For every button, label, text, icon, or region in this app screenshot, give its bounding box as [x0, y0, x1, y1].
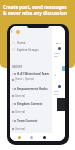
staticText: Explore Groups — [17, 48, 39, 52]
button[interactable]: Home - Special Announcements — [10, 77, 52, 82]
button[interactable]: General — [10, 93, 52, 98]
button[interactable]: Kingdom Connect — [10, 101, 52, 106]
staticText: disc — [54, 55, 58, 58]
staticText: H-A1 Winterland Team — [17, 72, 50, 76]
staticText: Stud — [54, 93, 59, 96]
button[interactable]: H-A1 Winterland Team — [10, 71, 52, 76]
staticText: Home — [17, 41, 26, 45]
staticText: General — [15, 110, 25, 114]
button[interactable]: General — [10, 126, 52, 131]
staticText: Ta — [54, 74, 57, 77]
staticText: General — [15, 127, 25, 131]
button[interactable]: Groups — [27, 133, 35, 141]
staticText: The m — [54, 52, 61, 55]
staticText: General — [15, 94, 25, 98]
button[interactable]: Empowerment Hacks — [10, 86, 52, 91]
staticText: Kingdom Connect — [17, 102, 43, 106]
button[interactable]: Home — [15, 133, 23, 141]
staticText: Create post, send messages — [3, 4, 67, 10]
staticText: & never miss any discussion — [3, 10, 67, 16]
staticText: Take — [54, 90, 59, 93]
staticText: Be A — [56, 41, 62, 44]
staticText: Empowerment Hacks — [17, 87, 48, 91]
button[interactable]: Explore Groups — [10, 46, 52, 53]
staticText: GROUPS — [12, 65, 23, 68]
button[interactable]: Home — [10, 39, 52, 46]
button[interactable]: Profile — [40, 133, 48, 141]
staticText: Team Connect — [17, 119, 38, 123]
staticText: Home - Special Announcements — [15, 77, 52, 82]
button[interactable]: General — [10, 109, 52, 114]
button[interactable]: Team Connect — [10, 118, 52, 123]
